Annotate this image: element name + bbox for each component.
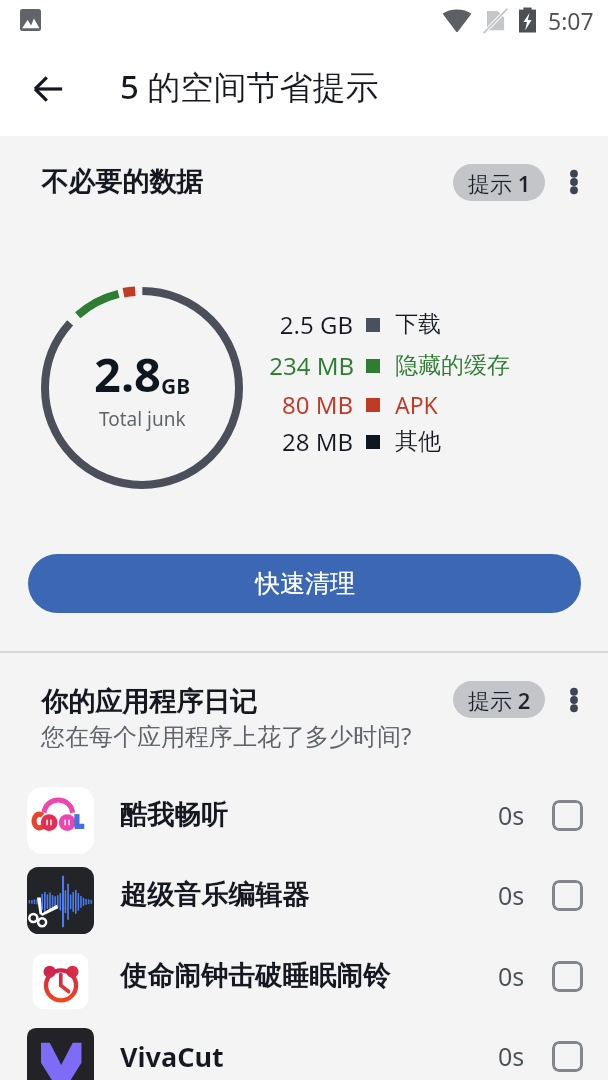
button[interactable]: 快速清理 xyxy=(28,554,581,613)
staticText: 超级音乐编辑器 xyxy=(120,878,309,912)
staticText: 不必要的数据 xyxy=(41,165,203,199)
staticText: 2.8 xyxy=(94,342,161,406)
staticText: APK xyxy=(395,389,438,420)
staticText: 234 MB xyxy=(269,349,353,382)
button[interactable]: More options xyxy=(560,686,588,714)
button[interactable]: 提示 1 xyxy=(453,164,545,201)
button[interactable]: 提示 2 xyxy=(453,681,545,718)
button[interactable]: 超级音乐编辑器 xyxy=(0,860,608,940)
staticText: 提示 1 xyxy=(468,168,531,198)
staticText: 您在每个应用程序上花了多少时间? xyxy=(41,719,412,752)
staticText: VivaCut xyxy=(120,1038,224,1075)
button[interactable]: Back xyxy=(19,60,76,117)
staticText: 2.5 GB xyxy=(279,308,353,341)
staticText: 快速清理 xyxy=(255,568,355,599)
button[interactable]: Select 使命闹钟击破睡眠闹铃 xyxy=(552,961,583,992)
staticText: 0s xyxy=(498,878,525,912)
staticText: Total junk xyxy=(99,406,186,432)
staticText: 0s xyxy=(498,1039,525,1073)
button[interactable]: More options xyxy=(560,168,588,196)
staticText: 0s xyxy=(498,798,525,832)
staticText: 5 的空间节省提示 xyxy=(120,64,379,109)
staticText: 酷我畅听 xyxy=(120,798,228,832)
button[interactable]: VivaCut xyxy=(0,1021,608,1080)
staticText: 28 MB xyxy=(281,425,353,458)
staticText: GB xyxy=(161,372,191,401)
button[interactable]: Select VivaCut xyxy=(552,1041,583,1072)
staticText: 提示 2 xyxy=(468,685,531,715)
button[interactable]: 酷我畅听 xyxy=(0,780,608,860)
staticText: 使命闹钟击破睡眠闹铃 xyxy=(120,959,390,993)
staticText: 0s xyxy=(498,959,525,993)
staticText: 你的应用程序日记 xyxy=(41,685,257,719)
staticText: 下载 xyxy=(395,310,441,339)
staticText: 80 MB xyxy=(281,388,353,421)
staticText: 5:07 xyxy=(548,5,594,36)
staticText: 其他 xyxy=(395,427,441,456)
button[interactable]: 使命闹钟击破睡眠闹铃 xyxy=(0,941,608,1021)
button[interactable]: Select 超级音乐编辑器 xyxy=(552,880,583,911)
button[interactable]: Select 酷我畅听 xyxy=(552,800,583,831)
staticText: 隐藏的缓存 xyxy=(395,351,510,380)
